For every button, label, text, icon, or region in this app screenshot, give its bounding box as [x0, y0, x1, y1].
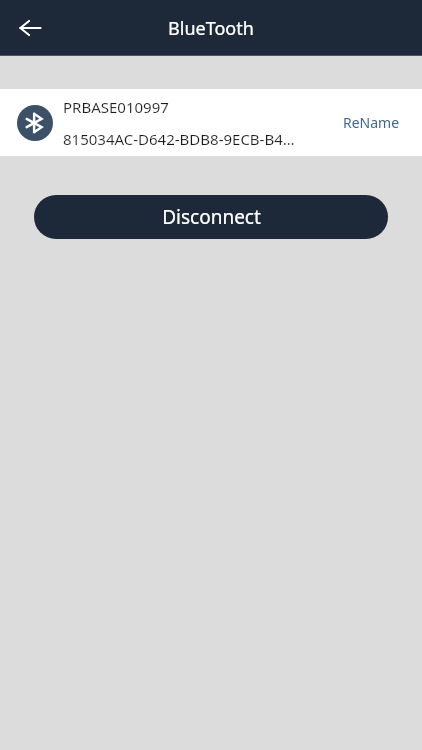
button[interactable]: Back — [10, 8, 50, 48]
button[interactable]: ReName — [331, 105, 412, 140]
button[interactable]: Disconnect — [34, 195, 388, 239]
staticText: ReName — [343, 113, 400, 132]
button[interactable]: PRBASE010997 — [0, 89, 422, 156]
staticText: 815034AC-D642-BDB8-9ECB-B4… — [63, 129, 295, 149]
staticText: PRBASE010997 — [63, 97, 169, 117]
staticText: Disconnect — [162, 204, 261, 230]
staticText: BlueTooth — [168, 16, 254, 41]
